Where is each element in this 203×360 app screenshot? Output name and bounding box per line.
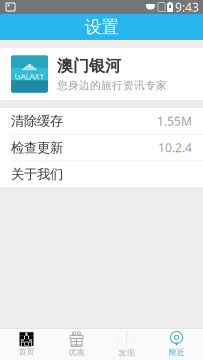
staticText: 清除缓存	[11, 113, 63, 129]
button[interactable]: GALAXY	[0, 48, 203, 100]
button[interactable]: 首页	[1, 329, 51, 360]
staticText: 检查更新	[11, 139, 63, 156]
button[interactable]: 检查更新	[0, 135, 203, 161]
staticText: 首页	[18, 347, 34, 357]
staticText: 9:43	[175, 0, 199, 15]
staticText: 优惠	[68, 347, 84, 357]
staticText: 您身边的旅行资讯专家	[57, 79, 167, 92]
staticText: 附近	[168, 347, 184, 357]
staticText: 1.55M	[157, 113, 192, 129]
staticText: 设置	[84, 16, 118, 38]
button[interactable]: 关于我们	[0, 161, 203, 188]
staticText: 发现	[118, 348, 134, 358]
staticText: 关于我们	[11, 166, 63, 183]
staticText: 澳门银河	[57, 56, 121, 76]
staticText: 10.2.4	[158, 140, 192, 156]
button[interactable]: 附近	[151, 329, 201, 360]
staticText: GALAXY	[14, 71, 44, 82]
button[interactable]: 发现	[101, 329, 151, 360]
button[interactable]: 清除缓存	[0, 108, 203, 135]
button[interactable]: 优惠	[51, 329, 101, 360]
